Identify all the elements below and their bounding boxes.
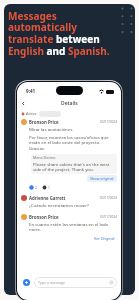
staticText: Please share cabins that's on the west s… [33, 161, 115, 173]
button[interactable]: Type a message [34, 277, 117, 288]
staticText: En cuanto estén las ventanas en el lado … [29, 221, 117, 233]
staticText: Adrienne Garrett [29, 195, 100, 201]
staticText: ¿Cuándo necesitamos mover? [29, 202, 89, 208]
staticText: Show original [90, 176, 114, 181]
staticText: 2 [35, 185, 37, 190]
staticText: Mirar las anotaciónes. [29, 126, 74, 132]
staticText: Por favor, muestra los casos/oficios que… [29, 134, 117, 152]
staticText: Details [61, 100, 78, 107]
staticText: Bronson Price [29, 214, 100, 220]
button[interactable]: Filter [39, 111, 61, 117]
staticText: 1 [48, 185, 50, 190]
button[interactable]: Ver Original [92, 235, 117, 242]
staticText: 03/17/2024 [100, 120, 117, 124]
staticText: 03/17/2024 [100, 196, 117, 200]
button[interactable]: Show original [87, 175, 117, 182]
staticText: Ver Original [94, 236, 115, 241]
staticText: Bronson Price [29, 119, 100, 125]
button[interactable]: Back [19, 99, 28, 108]
staticText: 03/17/2024 [100, 215, 117, 219]
staticText: Messages automatically translate between… [8, 9, 112, 58]
staticText: Mena Dorino [33, 155, 56, 160]
staticText: Type a message [38, 280, 65, 285]
staticText: Active [26, 111, 37, 116]
button[interactable]: Add attachment [21, 277, 32, 288]
staticText: 9:41 [26, 88, 36, 94]
